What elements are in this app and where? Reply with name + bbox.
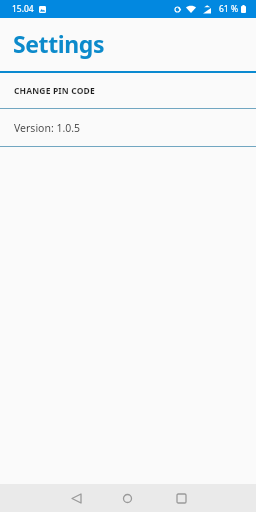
button[interactable]: Home	[107, 484, 147, 512]
staticText: 15.04	[12, 3, 34, 15]
button[interactable]: Version: 1.0.5	[0, 109, 256, 147]
button[interactable]: Back	[56, 484, 96, 512]
staticText: CHANGE PIN CODE	[14, 85, 95, 97]
staticText: 61 %	[219, 3, 238, 15]
button[interactable]: Recent apps	[161, 484, 201, 512]
button[interactable]: CHANGE PIN CODE	[0, 73, 256, 109]
staticText: Settings	[13, 28, 105, 59]
staticText: Version: 1.0.5	[14, 121, 81, 135]
